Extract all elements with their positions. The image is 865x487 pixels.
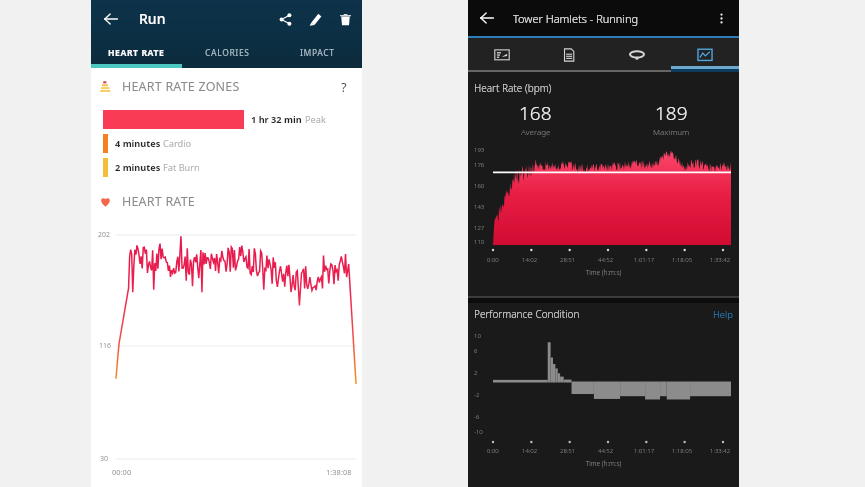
staticText: 00:00 (112, 467, 132, 477)
staticText: CALORIES (205, 47, 250, 59)
staticText: 1:38:08 (326, 467, 352, 477)
staticText: 189 (655, 100, 688, 126)
staticText: 44:52 (598, 256, 614, 264)
button[interactable]: Laps (535, 38, 603, 72)
button[interactable]: HEART RATE (91, 37, 182, 68)
staticText: Peak (305, 113, 326, 126)
staticText: Performance Condition (474, 307, 580, 321)
staticText: -10 (474, 428, 483, 436)
staticText: HEART RATE (122, 193, 195, 210)
staticText: 1:01:17 (634, 256, 655, 264)
staticText: 110 (474, 238, 485, 246)
staticText: 176 (474, 161, 485, 169)
button[interactable]: CALORIES (182, 37, 272, 68)
staticText: 28:51 (560, 256, 576, 264)
staticText: 2 minutes (115, 161, 163, 174)
button[interactable]: Back (476, 7, 498, 29)
staticText: ? (341, 78, 347, 96)
staticText: 0:00 (487, 256, 499, 264)
staticText: 1:33:42 (710, 447, 731, 455)
staticText: -2 (474, 391, 480, 399)
staticText: 2 (474, 369, 478, 377)
button[interactable]: More options (711, 8, 731, 28)
staticText: 4 minutes (115, 137, 163, 150)
staticText: 30 (100, 454, 109, 464)
staticText: 1:18:05 (672, 447, 693, 455)
staticText: 160 (474, 182, 485, 190)
staticText: 193 (474, 146, 485, 154)
staticText: 116 (99, 341, 112, 351)
staticText: 1:01:17 (634, 447, 655, 455)
staticText: HEART RATE ZONES (122, 78, 240, 95)
staticText: 10 (474, 332, 481, 340)
staticText: Help (713, 308, 734, 321)
button[interactable]: Summary (468, 38, 535, 72)
button[interactable]: Back (100, 8, 122, 30)
staticText: 168 (519, 100, 552, 126)
staticText: 14:02 (522, 256, 538, 264)
staticText: 127 (474, 224, 485, 232)
button[interactable]: Share (274, 8, 296, 30)
staticText: 202 (98, 230, 111, 240)
staticText: Fat Burn (163, 161, 200, 174)
staticText: Heart Rate (bpm) (474, 81, 552, 95)
button[interactable]: Route (603, 38, 671, 72)
staticText: Maximum (653, 126, 690, 137)
staticText: HEART RATE (108, 47, 165, 59)
staticText: -6 (474, 413, 480, 421)
staticText: 6 (474, 347, 478, 355)
staticText: Average (521, 126, 551, 137)
button[interactable]: IMPACT (272, 37, 362, 68)
button[interactable]: Charts (671, 38, 739, 72)
staticText: 1:18:05 (672, 256, 693, 264)
staticText: Time (h:m:s) (468, 268, 739, 277)
staticText: IMPACT (300, 47, 335, 59)
button[interactable]: Delete (334, 8, 356, 30)
staticText: 1:33:42 (710, 256, 731, 264)
button[interactable]: Edit (304, 8, 326, 30)
staticText: Tower Hamlets - Running (513, 11, 639, 26)
staticText: 1 hr 32 min (251, 113, 305, 126)
staticText: 0:00 (487, 447, 499, 455)
button[interactable]: Help (713, 308, 734, 321)
staticText: 14:02 (522, 447, 538, 455)
staticText: Time (h:m:s) (468, 459, 739, 468)
staticText: 44:52 (598, 447, 614, 455)
staticText: Run (139, 9, 166, 28)
staticText: Cardio (163, 137, 192, 150)
staticText: 143 (474, 203, 485, 211)
button[interactable]: Help (335, 78, 353, 96)
staticText: 28:51 (560, 447, 576, 455)
